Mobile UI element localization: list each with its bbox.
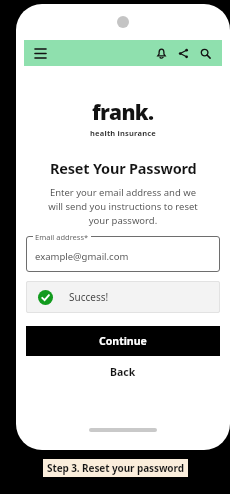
button[interactable]: Search	[196, 44, 215, 63]
button[interactable]: example@gmail.com	[26, 236, 220, 272]
staticText: Email address*	[35, 232, 89, 242]
button[interactable]: Notifications	[152, 44, 171, 63]
button[interactable]: Share	[174, 44, 193, 63]
button[interactable]: Back	[98, 362, 148, 382]
staticText: Reset Your Password	[50, 158, 197, 178]
staticText: Continue	[99, 334, 147, 348]
staticText: Back	[110, 365, 136, 379]
staticText: frank.	[92, 98, 154, 127]
staticText: example@gmail.com	[35, 250, 129, 263]
button[interactable]: Success!	[26, 281, 220, 313]
button[interactable]: Continue	[26, 326, 220, 356]
staticText: Success!	[69, 290, 109, 304]
staticText: Step 3. Reset your password	[47, 461, 184, 475]
staticText: Enter your email address and we will sen…	[43, 186, 203, 227]
staticText: health insurance	[90, 128, 157, 138]
button[interactable]: Menu	[31, 44, 49, 62]
